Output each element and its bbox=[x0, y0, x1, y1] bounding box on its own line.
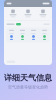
staticText: 空气质量等级变化趋势 bbox=[8, 85, 48, 90]
button[interactable]: Detail value bbox=[17, 33, 28, 40]
button[interactable]: Weather metric bbox=[5, 9, 20, 17]
button[interactable]: Detail value bbox=[28, 33, 39, 40]
button[interactable]: Detail value bbox=[39, 33, 50, 40]
button[interactable]: Weather metric bbox=[20, 9, 35, 17]
button[interactable]: Detail value bbox=[6, 33, 17, 40]
staticText: 详细天气信息 bbox=[4, 73, 52, 83]
button[interactable]: Weather metric bbox=[35, 9, 50, 17]
